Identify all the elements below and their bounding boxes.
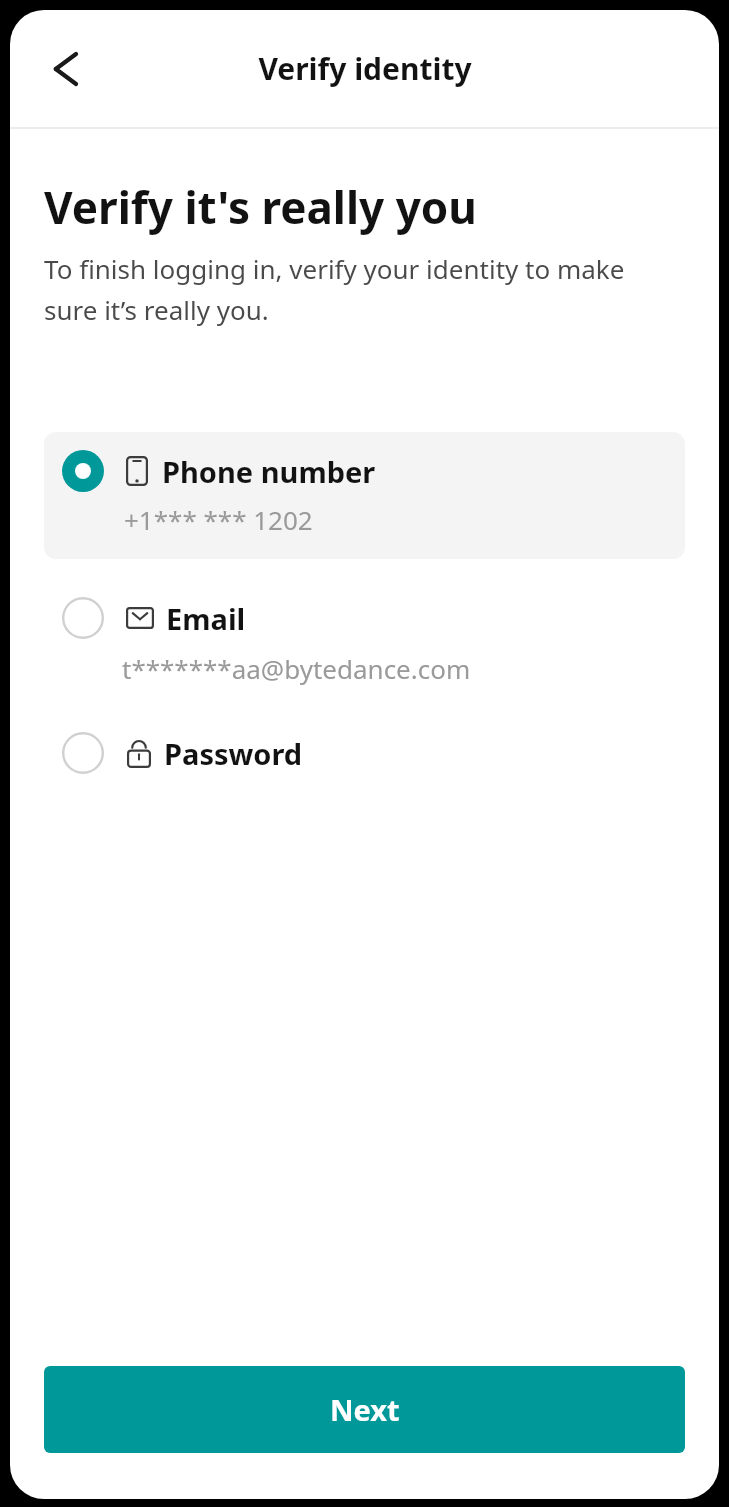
- button[interactable]: Next: [44, 1366, 685, 1453]
- button[interactable]: Phone number: [44, 432, 685, 559]
- staticText: Password: [164, 734, 303, 773]
- staticText: Phone number: [162, 452, 376, 491]
- button[interactable]: Email: [44, 585, 685, 698]
- staticText: t*******aa@bytedance.com: [122, 651, 471, 686]
- staticText: Next: [330, 1390, 400, 1429]
- button[interactable]: Back: [34, 43, 86, 95]
- staticText: To finish logging in, verify your identi…: [44, 251, 669, 328]
- button[interactable]: Password: [44, 722, 685, 784]
- staticText: +1*** *** 1202: [124, 502, 313, 537]
- staticText: Email: [166, 599, 246, 638]
- staticText: Verify it's really you: [44, 177, 477, 237]
- staticText: Verify identity: [258, 48, 472, 89]
